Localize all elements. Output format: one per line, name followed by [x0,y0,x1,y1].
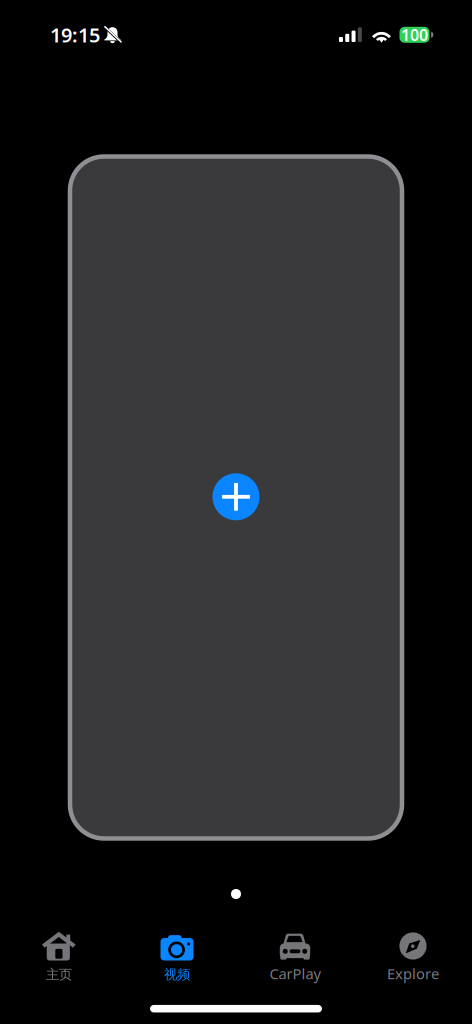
staticText: Explore [387,964,439,983]
staticText: 100 [401,24,428,45]
button[interactable]: 视频 [118,931,236,981]
staticText: CarPlay [269,964,320,983]
button[interactable]: Explore [354,931,472,981]
staticText: 主页 [46,966,72,983]
staticText: 视频 [164,966,190,983]
button[interactable]: 主页 [0,931,118,981]
staticText: 19:15 [50,21,100,48]
button[interactable]: CarPlay [236,931,354,981]
button[interactable]: Add [212,473,259,520]
